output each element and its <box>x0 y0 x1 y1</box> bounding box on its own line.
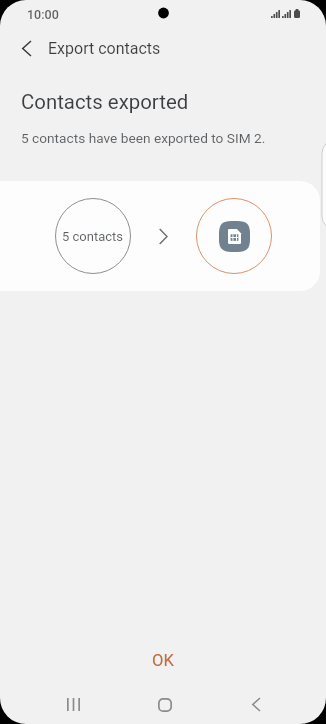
staticText: Export contacts <box>48 39 161 58</box>
staticText: OK <box>152 651 174 670</box>
staticText: 5 contacts have been exported to SIM 2. <box>21 130 266 146</box>
staticText: 10:00 <box>27 7 59 22</box>
button[interactable]: Back <box>236 685 276 724</box>
button[interactable]: OK <box>0 640 326 680</box>
button[interactable]: Recent apps <box>53 685 93 724</box>
staticText: 5 contacts <box>62 229 124 244</box>
button[interactable]: Home <box>145 685 185 724</box>
button[interactable]: Back <box>6 28 46 68</box>
button[interactable]: 5 contacts <box>0 181 326 291</box>
staticText: Contacts exported <box>21 90 189 114</box>
